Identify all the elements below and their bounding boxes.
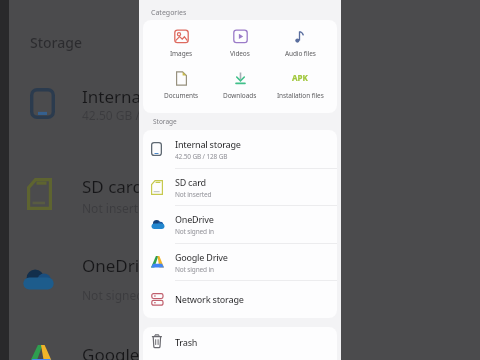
staticText: Network storage: [175, 293, 244, 305]
staticText: APK: [292, 72, 308, 83]
staticText: Google Drive: [82, 343, 186, 360]
staticText: SD card: [175, 176, 206, 188]
staticText: Images: [170, 49, 193, 58]
button[interactable]: APK: [268, 68, 332, 101]
staticText: Trash: [175, 336, 198, 348]
staticText: Categories: [151, 8, 187, 18]
button[interactable]: Downloads: [208, 68, 272, 101]
button[interactable]: Audio files: [268, 26, 332, 59]
button[interactable]: Internal storage: [143, 130, 337, 168]
staticText: Downloads: [223, 91, 257, 100]
staticText: Not inserted: [82, 200, 153, 216]
staticText: Not signed in: [175, 265, 214, 274]
button[interactable]: Trash: [143, 327, 337, 356]
staticText: Internal storage: [175, 138, 241, 150]
staticText: Storage: [153, 117, 177, 126]
staticText: Google Drive: [175, 251, 228, 263]
staticText: SD card: [82, 175, 143, 198]
staticText: Not signed in: [82, 287, 158, 303]
staticText: OneDrive: [82, 254, 158, 277]
staticText: Videos: [230, 49, 250, 58]
staticText: 42.50 GB / 128 GB: [82, 107, 184, 123]
staticText: OneDrive: [175, 213, 214, 225]
button[interactable]: Documents: [149, 68, 213, 101]
staticText: Not signed in: [175, 227, 214, 236]
staticText: Installation files: [277, 91, 324, 100]
button[interactable]: OneDrive: [143, 205, 337, 243]
button[interactable]: Images: [149, 26, 213, 59]
staticText: Storage: [30, 33, 82, 52]
staticText: Internal storage: [82, 85, 211, 108]
button[interactable]: Videos: [208, 26, 272, 59]
staticText: Audio files: [285, 49, 316, 58]
staticText: Not inserted: [175, 190, 212, 199]
staticText: 42.50 GB / 128 GB: [175, 152, 228, 161]
staticText: Documents: [164, 91, 199, 100]
button[interactable]: Google Drive: [143, 243, 337, 281]
button[interactable]: SD card: [143, 168, 337, 206]
button[interactable]: Network storage: [143, 280, 337, 318]
